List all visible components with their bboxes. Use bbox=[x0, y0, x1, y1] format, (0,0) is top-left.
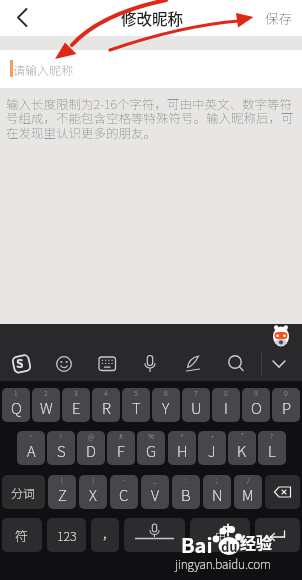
staticText: 输入长度限制为2-16个字符，可由中英文、数字等符 号组成，不能包含空格等特殊符… bbox=[6, 94, 294, 141]
staticText: 修改昵称 bbox=[121, 7, 184, 29]
button[interactable] bbox=[50, 350, 78, 378]
staticText: S bbox=[16, 354, 24, 371]
button[interactable]: 请输入昵称 bbox=[0, 50, 302, 88]
staticText: Y bbox=[162, 397, 170, 419]
staticText: D bbox=[86, 440, 96, 462]
button[interactable]: - bbox=[110, 475, 138, 509]
button[interactable]: : bbox=[172, 475, 200, 509]
button[interactable] bbox=[7, 350, 35, 378]
staticText: A bbox=[27, 440, 36, 462]
staticText: / bbox=[247, 475, 250, 485]
button[interactable] bbox=[179, 350, 207, 378]
button[interactable] bbox=[136, 350, 164, 378]
staticText: E bbox=[72, 397, 81, 419]
staticText: 中 bbox=[215, 527, 226, 543]
staticText: K bbox=[237, 440, 247, 462]
button[interactable]: ^ bbox=[168, 431, 196, 465]
staticText: @ bbox=[88, 431, 95, 441]
staticText: F bbox=[117, 440, 125, 462]
staticText: 3 bbox=[74, 388, 78, 398]
staticText: X bbox=[89, 484, 97, 506]
staticText: ? bbox=[270, 431, 274, 441]
staticText: C bbox=[119, 484, 129, 506]
button[interactable]: 分词 bbox=[2, 475, 45, 509]
button[interactable] bbox=[255, 518, 300, 552]
button[interactable]: ~ bbox=[17, 431, 45, 465]
button[interactable]: 123 bbox=[47, 518, 86, 552]
button[interactable] bbox=[265, 350, 293, 378]
staticText: · bbox=[209, 431, 216, 441]
button[interactable] bbox=[124, 518, 185, 552]
button[interactable]: # bbox=[107, 431, 135, 465]
staticText: Bai bbox=[181, 530, 213, 559]
staticText: 0 bbox=[284, 388, 288, 398]
button[interactable]: 中 bbox=[190, 518, 250, 552]
staticText: R bbox=[102, 397, 111, 419]
button[interactable]: ) bbox=[79, 475, 107, 509]
button[interactable]: @ bbox=[77, 431, 105, 465]
staticText: # bbox=[119, 431, 123, 441]
staticText: 1 bbox=[14, 388, 18, 398]
staticText: , bbox=[103, 521, 107, 543]
staticText: * bbox=[241, 431, 244, 441]
staticText: 符 bbox=[15, 526, 29, 545]
button[interactable]: 1 bbox=[2, 388, 30, 422]
button[interactable]: 8 bbox=[212, 388, 240, 422]
button[interactable]: 2 bbox=[32, 388, 60, 422]
staticText: 中 bbox=[222, 521, 235, 538]
button[interactable]: 6 bbox=[152, 388, 180, 422]
button[interactable] bbox=[93, 350, 121, 378]
button[interactable]: % bbox=[137, 431, 165, 465]
button[interactable]: ; bbox=[203, 475, 231, 509]
button[interactable]: , bbox=[91, 518, 119, 552]
button[interactable]: 4 bbox=[92, 388, 120, 422]
staticText: T bbox=[132, 397, 141, 419]
staticText: I bbox=[224, 397, 228, 419]
staticText: O bbox=[251, 397, 262, 419]
staticText: 6 bbox=[164, 388, 168, 398]
button[interactable]: * bbox=[228, 431, 256, 465]
button[interactable]: ? bbox=[258, 431, 286, 465]
button[interactable]: ( bbox=[48, 475, 76, 509]
staticText: : bbox=[185, 475, 187, 485]
staticText: 5 bbox=[134, 388, 138, 398]
staticText: H bbox=[177, 440, 188, 462]
staticText: ; bbox=[216, 475, 218, 485]
staticText: P bbox=[282, 397, 291, 419]
button[interactable]: _ bbox=[141, 475, 169, 509]
button[interactable]: 符 bbox=[2, 518, 42, 552]
staticText: M bbox=[242, 484, 254, 506]
button[interactable]: 保存 bbox=[258, 0, 302, 36]
button[interactable]: ! bbox=[47, 431, 75, 465]
button[interactable]: 7 bbox=[182, 388, 210, 422]
staticText: W bbox=[40, 397, 53, 419]
staticText: 请输入昵称 bbox=[13, 61, 74, 78]
staticText: - bbox=[123, 475, 126, 485]
button[interactable]: 5 bbox=[122, 388, 150, 422]
staticText: 经验 bbox=[240, 530, 273, 553]
staticText: 分词 bbox=[11, 484, 36, 501]
staticText: ! bbox=[60, 431, 62, 441]
button[interactable] bbox=[265, 475, 300, 509]
button[interactable] bbox=[222, 350, 250, 378]
button[interactable]: · bbox=[198, 431, 226, 465]
staticText: U bbox=[191, 397, 202, 419]
staticText: % bbox=[148, 431, 155, 441]
button[interactable]: 3 bbox=[62, 388, 90, 422]
staticText: ) bbox=[92, 475, 95, 485]
staticText: L bbox=[268, 440, 276, 462]
staticText: G bbox=[146, 440, 156, 462]
staticText: jingyan.baidu.com bbox=[175, 555, 271, 572]
staticText: B bbox=[181, 484, 191, 506]
staticText: V bbox=[151, 484, 159, 506]
staticText: 123 bbox=[57, 526, 77, 544]
staticText: J bbox=[208, 440, 216, 462]
button[interactable]: 0 bbox=[272, 388, 300, 422]
staticText: 8 bbox=[224, 388, 228, 398]
button[interactable]: / bbox=[234, 475, 262, 509]
button[interactable] bbox=[0, 0, 44, 36]
staticText: 7 bbox=[194, 388, 198, 398]
staticText: 2 bbox=[44, 388, 48, 398]
button[interactable]: 9 bbox=[242, 388, 270, 422]
staticText: S bbox=[57, 440, 66, 462]
